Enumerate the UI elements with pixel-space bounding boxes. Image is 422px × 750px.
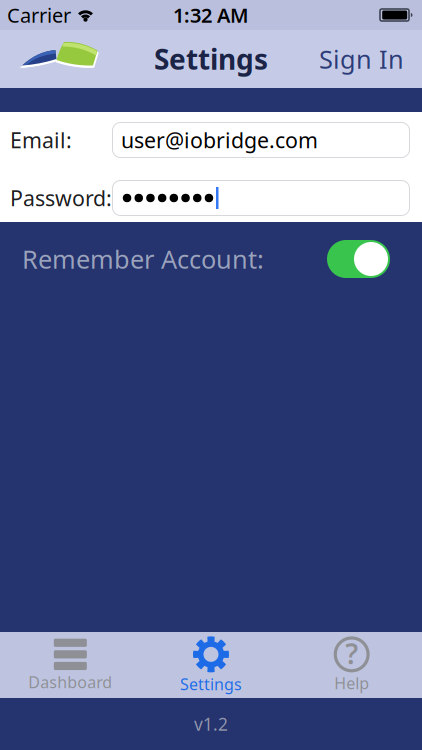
staticText: Help (334, 672, 369, 694)
button[interactable]: Sign In (319, 42, 422, 76)
button[interactable]: Remember Account (327, 240, 390, 278)
staticText: ? (345, 635, 358, 672)
staticText: Dashboard (28, 671, 112, 693)
button[interactable]: Dashboard (0, 632, 141, 698)
staticText: user@iobridge.com (121, 126, 318, 154)
staticText: 1:32 AM (173, 2, 249, 28)
staticText: Sign In (319, 42, 404, 76)
staticText: Password: (10, 184, 112, 212)
staticText: Remember Account: (22, 242, 264, 276)
staticText: Carrier (7, 2, 71, 28)
button[interactable]: Settings (141, 632, 281, 698)
staticText: Email: (10, 126, 72, 154)
staticText: v1.2 (194, 712, 228, 735)
button[interactable]: Help (281, 632, 422, 698)
staticText: Settings (180, 673, 242, 695)
staticText: Settings (154, 40, 268, 78)
